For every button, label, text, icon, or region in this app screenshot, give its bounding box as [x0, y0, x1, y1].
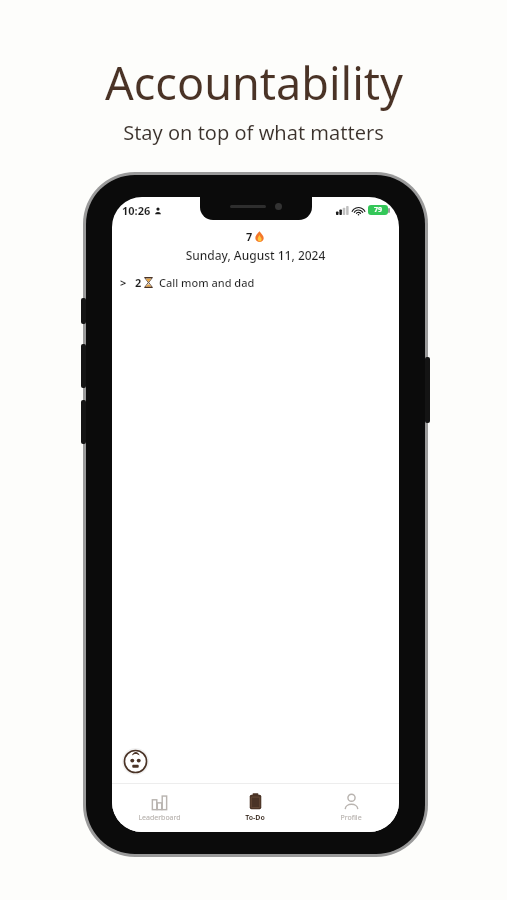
button[interactable]: Leaderboard	[112, 784, 207, 832]
button[interactable]: Profile	[303, 784, 399, 832]
other: Leaderboard	[151, 793, 168, 810]
staticText: Sunday, August 11, 2024	[112, 247, 399, 263]
staticText: 10:26	[122, 203, 151, 218]
staticText: 7	[246, 229, 253, 244]
staticText: Stay on top of what matters	[123, 119, 384, 146]
button[interactable]: >	[112, 273, 399, 292]
staticText: Accountability	[105, 52, 403, 113]
button[interactable]: Profile avatar	[122, 748, 149, 775]
staticText: Call mom and dad	[159, 275, 255, 290]
staticText: To-Do	[245, 813, 265, 823]
staticText: 79	[374, 205, 383, 215]
other: To-Do	[247, 793, 264, 810]
staticText: Leaderboard	[138, 813, 181, 823]
other: Profile	[343, 793, 360, 810]
staticText: >	[120, 275, 127, 290]
staticText: Profile	[340, 813, 362, 823]
button[interactable]: To-Do	[207, 784, 303, 832]
staticText: 2	[135, 275, 142, 290]
